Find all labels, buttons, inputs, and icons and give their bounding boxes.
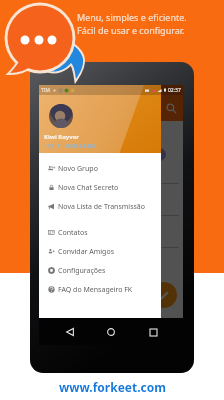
button[interactable]: FAQ do Mensageiro FK: [39, 280, 161, 299]
button[interactable]: Recent apps: [142, 321, 164, 343]
button[interactable]: Configurações: [39, 261, 161, 280]
staticText: Menu, simples e eficiente.: [77, 11, 187, 23]
staticText: Novo Grupo: [58, 164, 98, 174]
staticText: www.forkeet.com: [59, 379, 166, 395]
button[interactable]: Nova Chat Secreto: [39, 178, 161, 197]
staticText: +55 (11) 98888-8888: [44, 142, 96, 149]
staticText: Kiwi Rayver: [44, 133, 79, 141]
other: Search: [166, 103, 177, 114]
staticText: Fácil de usar e configurar.: [77, 24, 185, 36]
staticText: Configurações: [58, 266, 106, 276]
staticText: Nova Chat Secreto: [58, 183, 119, 193]
button[interactable]: Nova Lista de Transmissão: [39, 197, 161, 216]
button[interactable]: Home: [100, 321, 122, 343]
staticText: Contatos: [58, 228, 88, 238]
staticText: Convidar Amigos: [58, 247, 115, 257]
button[interactable]: Contatos: [39, 223, 161, 242]
staticText: Nova Lista de Transmissão: [58, 202, 146, 212]
staticText: TIM: [41, 87, 51, 94]
button[interactable]: Back: [59, 321, 81, 343]
button[interactable]: Novo Grupo: [39, 159, 161, 178]
button[interactable]: Convidar Amigos: [39, 242, 161, 261]
staticText: 02:37: [168, 87, 181, 94]
button[interactable]: New chat: [151, 282, 177, 308]
staticText: FAQ do Mensageiro FK: [58, 285, 133, 295]
